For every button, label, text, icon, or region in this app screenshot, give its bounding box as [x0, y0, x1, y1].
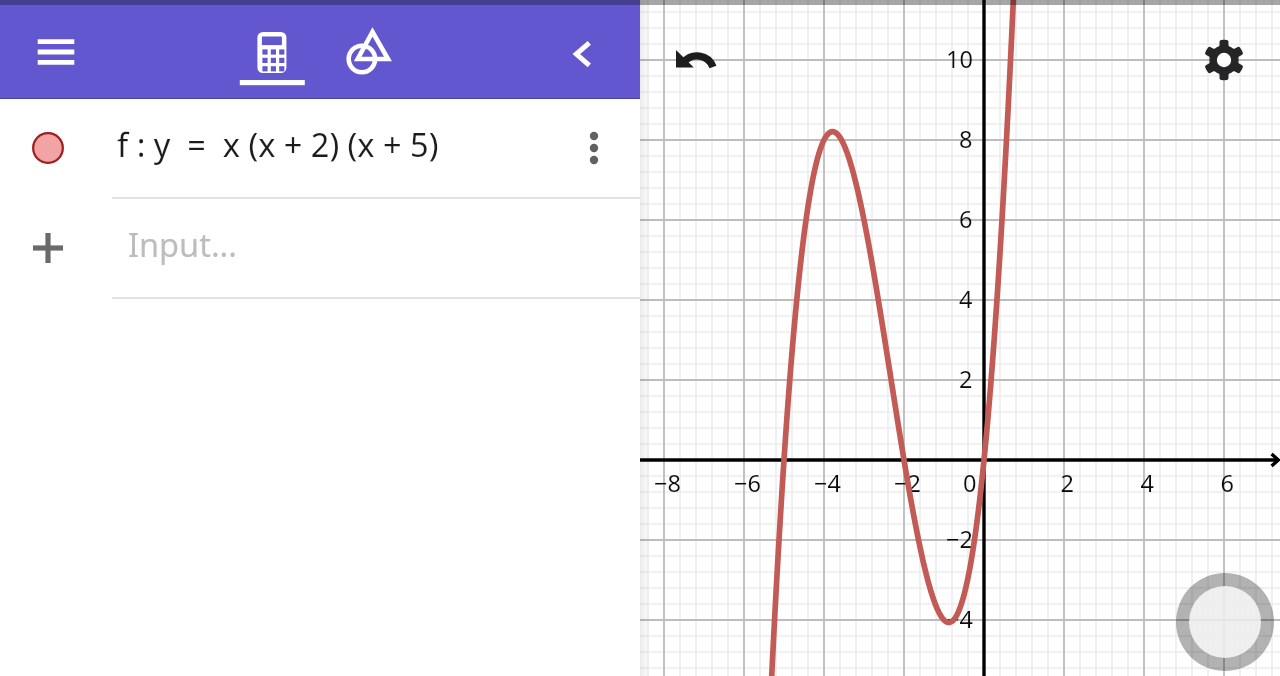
button[interactable]: Reset view	[1170, 567, 1280, 676]
button[interactable]: Menu	[18, 14, 94, 90]
button[interactable]: Graphing calculator	[232, 12, 312, 92]
button[interactable]: More options	[542, 99, 640, 197]
button[interactable]: Geometry	[328, 12, 408, 92]
button[interactable]: Toggle visibility	[0, 99, 112, 197]
button[interactable]: Settings	[1194, 30, 1254, 90]
staticText: f : y = x (x + 2) (x + 5)	[117, 122, 439, 166]
staticText: Input...	[128, 222, 238, 266]
button[interactable]: Back	[546, 14, 622, 90]
button[interactable]: Input...	[0, 199, 640, 297]
button[interactable]: Undo	[666, 29, 726, 89]
